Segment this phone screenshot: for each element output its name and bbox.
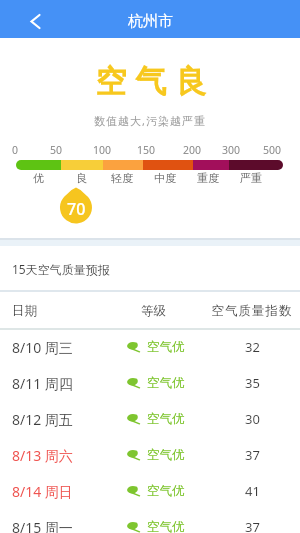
- staticText: 优: [33, 171, 44, 185]
- staticText: 严重: [240, 171, 262, 185]
- staticText: 150: [137, 143, 156, 157]
- staticText: 0: [12, 143, 19, 157]
- staticText: 500: [263, 143, 282, 157]
- staticText: 等级: [141, 303, 166, 319]
- staticText: 300: [222, 143, 241, 157]
- staticText: 空气优: [147, 339, 185, 355]
- button[interactable]: 8/11 周四: [0, 365, 300, 401]
- button[interactable]: 8/15 周一: [0, 509, 300, 533]
- staticText: 空气优: [147, 447, 185, 463]
- staticText: 8/12 周五: [12, 410, 73, 429]
- staticText: 空气质量指数: [211, 303, 292, 319]
- staticText: 70: [67, 198, 86, 220]
- staticText: 15天空气质量预报: [12, 261, 110, 277]
- staticText: 日期: [12, 303, 37, 319]
- button[interactable]: [12, 0, 58, 38]
- button[interactable]: 8/14 周日: [0, 473, 300, 509]
- staticText: 37: [245, 446, 260, 464]
- staticText: 杭州市: [128, 12, 173, 31]
- staticText: 41: [245, 482, 260, 500]
- staticText: 空气优: [147, 483, 185, 499]
- staticText: 8/14 周日: [12, 482, 73, 501]
- staticText: 30: [245, 410, 260, 428]
- staticText: 轻度: [111, 171, 133, 185]
- staticText: 数值越大,污染越严重: [94, 113, 206, 128]
- staticText: 重度: [197, 171, 219, 185]
- staticText: 200: [183, 143, 202, 157]
- staticText: 50: [50, 143, 63, 157]
- staticText: 8/15 周一: [12, 518, 73, 533]
- staticText: 8/10 周三: [12, 338, 73, 357]
- staticText: 空气优: [147, 519, 185, 533]
- button[interactable]: 8/13 周六: [0, 437, 300, 473]
- staticText: 中度: [154, 171, 176, 185]
- staticText: 空气优: [147, 411, 185, 427]
- button[interactable]: 8/10 周三: [0, 329, 300, 365]
- button[interactable]: 8/12 周五: [0, 401, 300, 437]
- staticText: 空气优: [147, 375, 185, 391]
- staticText: 100: [93, 143, 112, 157]
- staticText: 8/11 周四: [12, 374, 73, 393]
- staticText: 8/13 周六: [12, 446, 73, 465]
- staticText: 空气良: [91, 62, 211, 101]
- staticText: 32: [245, 338, 260, 356]
- staticText: 35: [245, 374, 260, 392]
- staticText: 37: [245, 518, 260, 533]
- staticText: 良: [76, 171, 87, 185]
